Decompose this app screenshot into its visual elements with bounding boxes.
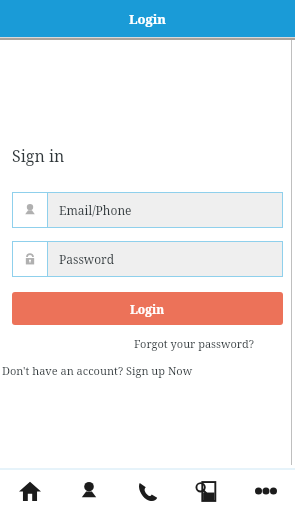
staticText: Email/Phone [59,202,132,218]
staticText: Login [130,301,165,317]
button[interactable]: Email/Phone [12,192,283,228]
button[interactable]: Login [12,292,283,325]
staticText: Sign in [12,145,65,167]
button[interactable]: More [236,470,295,512]
staticText: Login [129,10,167,28]
button[interactable]: Login [0,0,295,37]
button[interactable]: Password [12,241,283,277]
button[interactable]: Home [0,470,59,512]
button[interactable]: Call [118,470,177,512]
button[interactable]: Don't have an account? Sign up Now [2,363,193,378]
button[interactable]: Forgot your password? [134,336,255,351]
button[interactable]: Find on map [177,470,236,512]
staticText: Password [59,251,115,267]
button[interactable]: Profile [59,470,118,512]
